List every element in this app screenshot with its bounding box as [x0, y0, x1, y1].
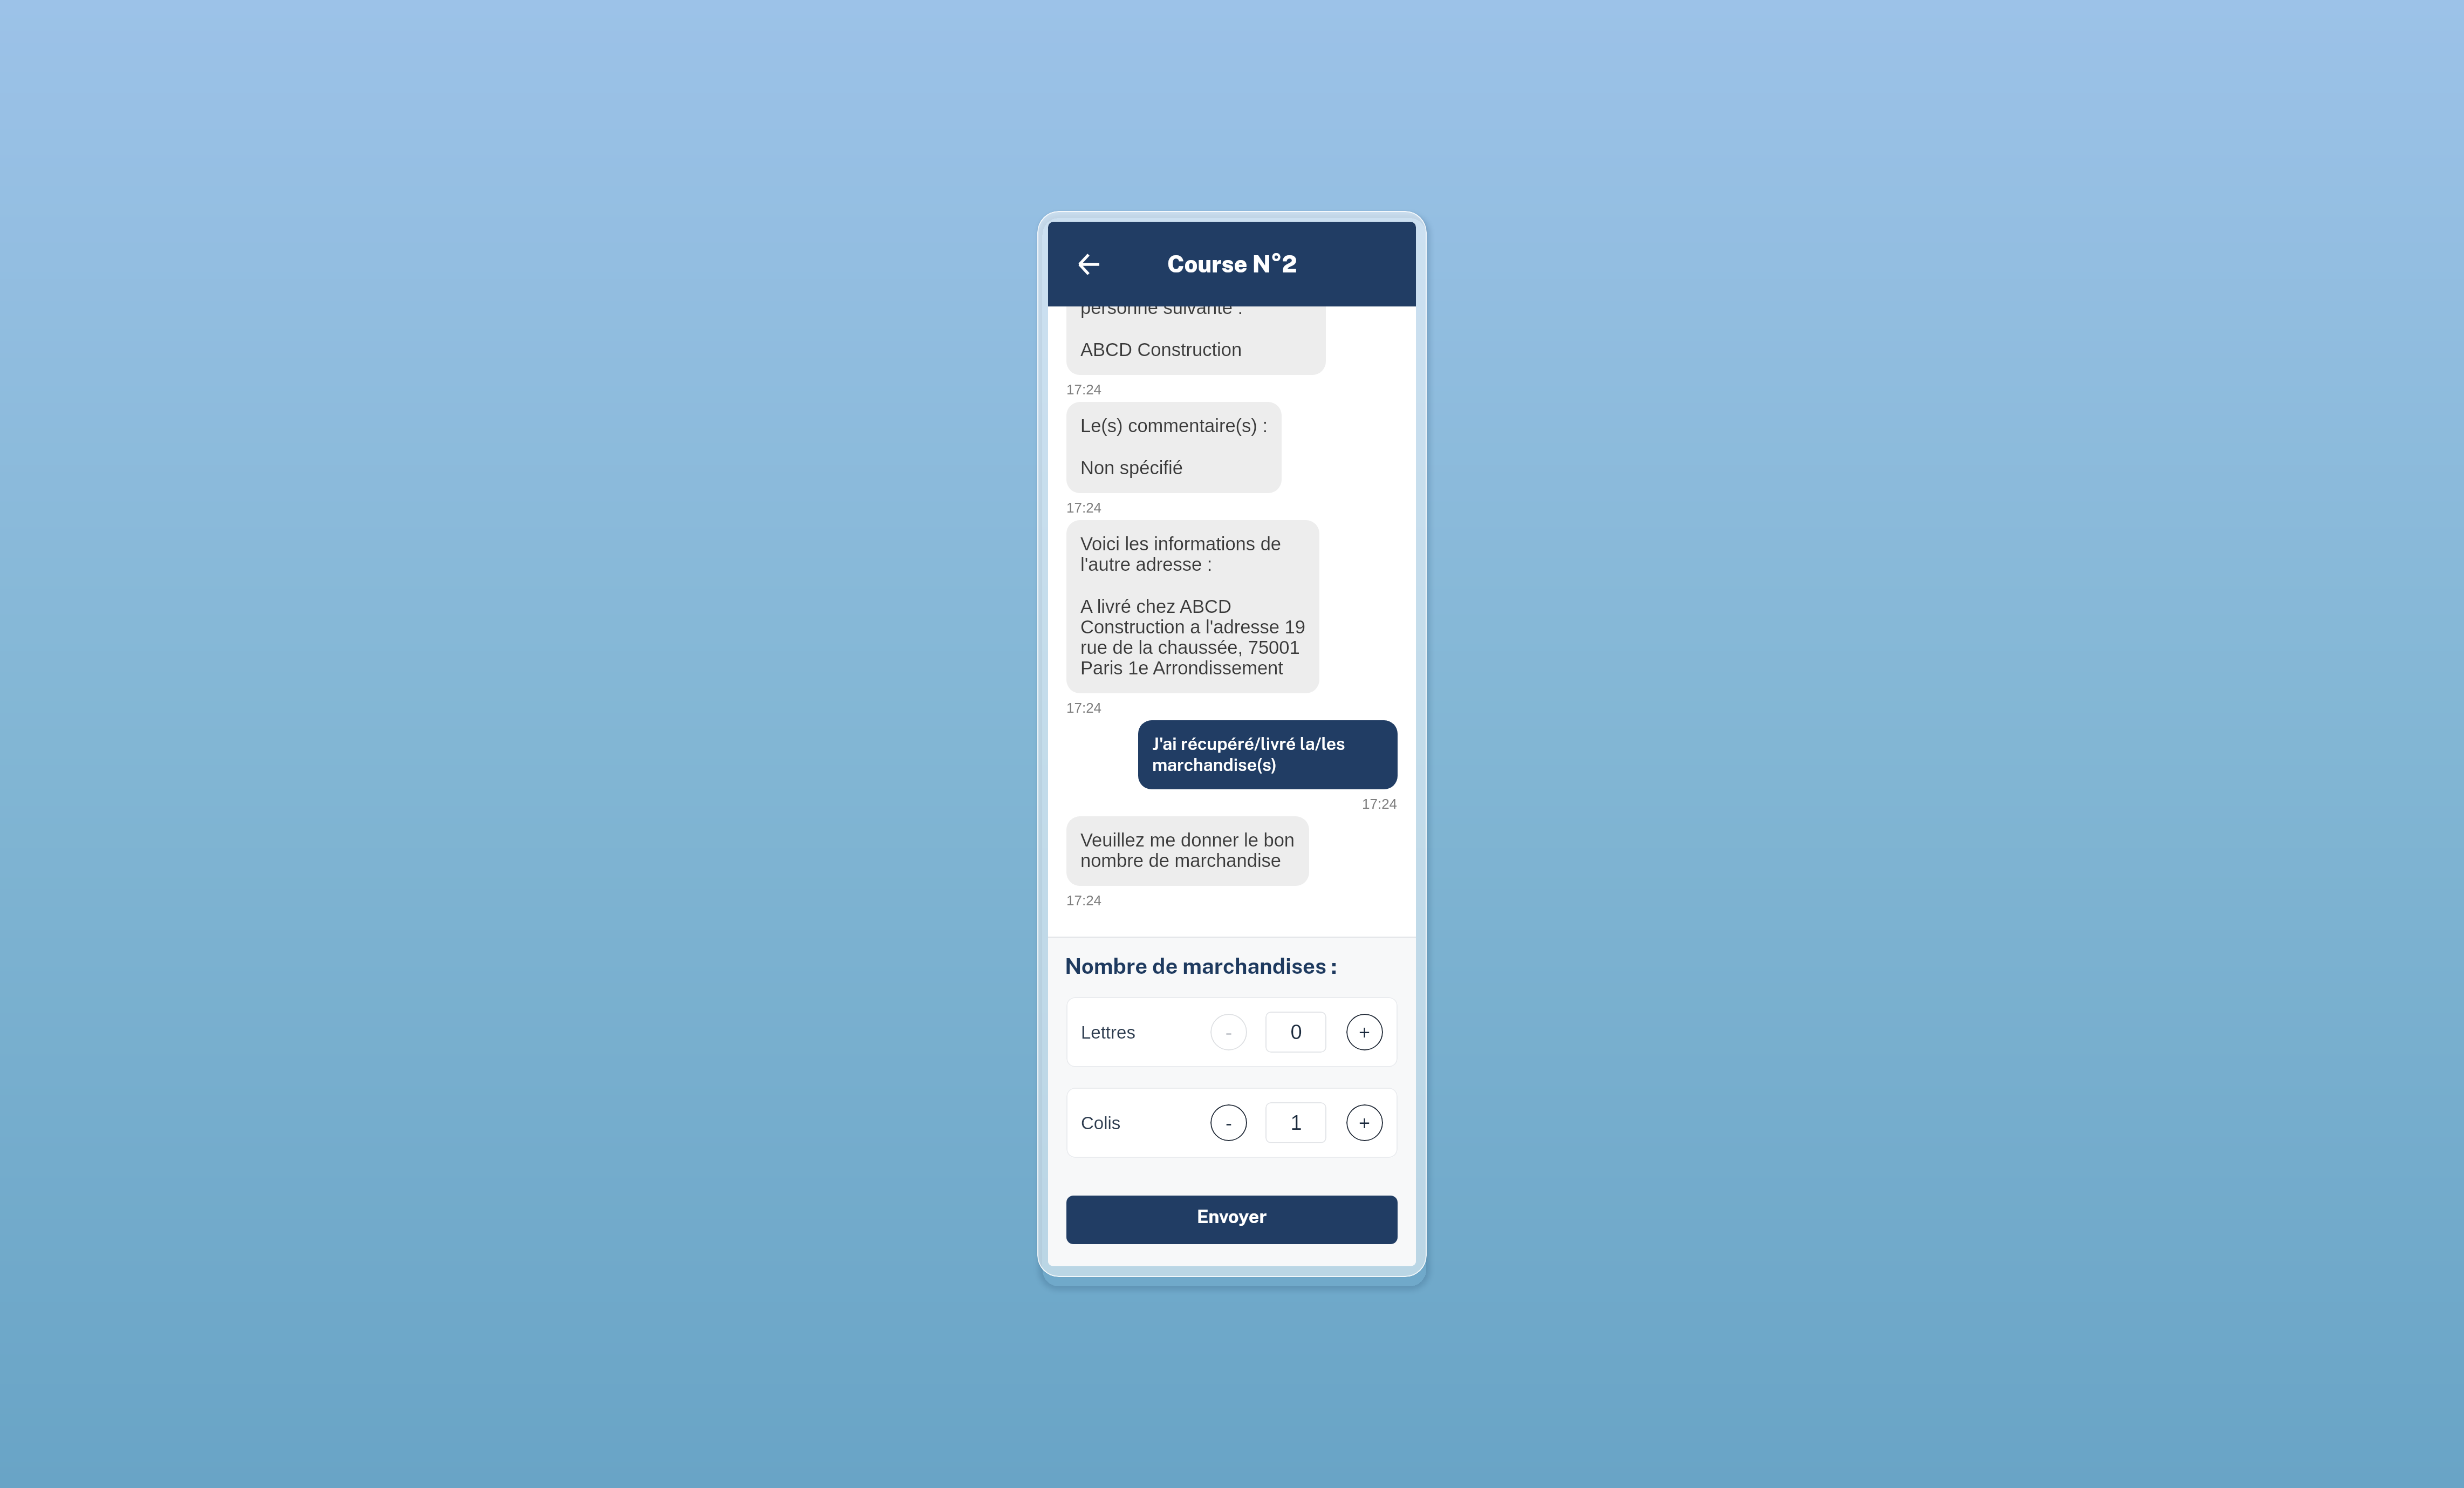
staticText: Non spécifié: [1080, 458, 1183, 479]
button[interactable]: Decrease Lettres: [1210, 1014, 1247, 1050]
staticText: 0: [1290, 1021, 1302, 1043]
staticText: 17:24: [1066, 500, 1102, 515]
staticText: 17:24: [1066, 892, 1102, 908]
button[interactable]: Veuillez me donner le bon nombre de marc…: [1066, 816, 1309, 886]
button[interactable]: Decrease Colis: [1210, 1104, 1247, 1141]
staticText: 17:24: [1362, 796, 1398, 811]
staticText: +: [1359, 1112, 1371, 1134]
staticText: Envoyer: [1197, 1206, 1267, 1227]
staticText: Nombre de marchandises :: [1065, 953, 1337, 979]
button[interactable]: Envoyer: [1066, 1196, 1398, 1244]
staticText: Le(s) commentaire(s) :: [1080, 415, 1268, 436]
staticText: ABCD Construction: [1080, 339, 1242, 360]
button[interactable]: Le(s) commentaire(s) :: [1066, 402, 1282, 493]
staticText: Voici les informations de l'autre adress…: [1080, 534, 1282, 575]
staticText: 17:24: [1066, 381, 1102, 397]
staticText: -: [1226, 1112, 1232, 1134]
button[interactable]: Increase Colis: [1346, 1104, 1383, 1141]
staticText: 17:24: [1066, 700, 1102, 715]
staticText: Course N°2: [1167, 250, 1297, 278]
button[interactable]: Vous devez livrer la/les marchandise(s) …: [1066, 243, 1326, 375]
staticText: J'ai récupéré/livré la/les marchandise(s…: [1152, 734, 1384, 775]
button[interactable]: Back: [1063, 238, 1114, 290]
staticText: A livré chez ABCD Construction a l'adres…: [1080, 596, 1305, 679]
staticText: 1: [1290, 1111, 1302, 1134]
staticText: Colis: [1081, 1113, 1121, 1133]
staticText: -: [1226, 1021, 1232, 1043]
button[interactable]: J'ai récupéré/livré la/les marchandise(s…: [1138, 720, 1398, 789]
button[interactable]: Voici les informations de l'autre adress…: [1066, 520, 1319, 693]
staticText: Veuillez me donner le bon nombre de marc…: [1080, 830, 1295, 871]
button[interactable]: Increase Lettres: [1346, 1014, 1383, 1050]
staticText: Lettres: [1081, 1022, 1135, 1042]
staticText: Vous devez livrer la/les marchandise(s) …: [1080, 256, 1312, 318]
staticText: +: [1359, 1021, 1371, 1043]
